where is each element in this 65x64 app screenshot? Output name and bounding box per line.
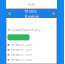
staticText: Transaction item: [10, 43, 31, 46]
staticText: Account Summary: [7, 27, 40, 32]
staticText: Transaction item: [10, 48, 31, 51]
staticText: <: [8, 10, 11, 17]
staticText: =: [52, 10, 55, 17]
staticText: Transaction item: [10, 58, 31, 61]
staticText: 9:41: [28, 2, 35, 7]
staticText: Mobile Banking: [24, 8, 38, 19]
staticText: Transaction item: [10, 53, 31, 56]
